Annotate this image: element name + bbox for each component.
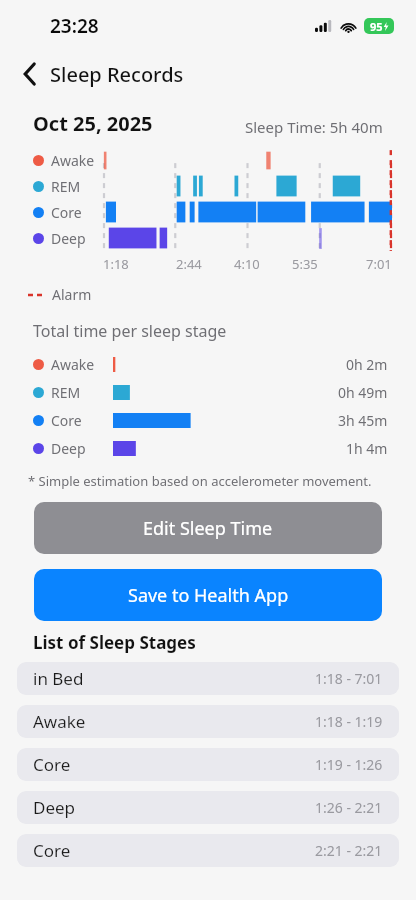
staticText: Edit Sleep Time [143, 516, 273, 541]
button[interactable]: Awake [17, 705, 399, 738]
button[interactable]: Edit Sleep Time [34, 502, 382, 554]
staticText: Awake [33, 710, 86, 733]
staticText: Save to Health App [128, 583, 289, 608]
staticText: Core [33, 753, 71, 776]
staticText: 3h 45m [338, 411, 388, 430]
staticText: 0h 2m [346, 355, 388, 374]
button[interactable]: Core [17, 748, 399, 781]
staticText: in Bed [33, 667, 84, 690]
staticText: Awake [51, 151, 95, 170]
staticText: List of Sleep Stages [33, 631, 196, 654]
staticText: 1:18 [103, 255, 129, 273]
staticText: 5:35 [292, 255, 318, 273]
staticText: 1:18 - 7:01 [315, 669, 383, 688]
staticText: Deep [51, 439, 107, 458]
staticText: 1:26 - 2:21 [315, 798, 383, 817]
staticText: Alarm [52, 285, 92, 304]
staticText: Deep [51, 229, 86, 248]
staticText: Total time per sleep stage [33, 320, 227, 342]
staticText: 1:19 - 1:26 [315, 755, 383, 774]
staticText: 23:28 [50, 13, 99, 39]
staticText: 0h 49m [338, 383, 388, 402]
staticText: Awake [51, 355, 107, 374]
staticText: 7:01 [366, 255, 392, 273]
staticText: Sleep Time: 5h 40m [245, 117, 383, 137]
button[interactable]: Back [12, 56, 48, 92]
staticText: 4:10 [234, 255, 260, 273]
staticText: 2:21 - 2:21 [315, 841, 383, 860]
staticText: Sleep Records [50, 61, 184, 88]
staticText: 1h 4m [346, 439, 388, 458]
button[interactable]: Core [17, 834, 399, 867]
staticText: Oct 25, 2025 [33, 110, 153, 137]
staticText: 1:18 - 1:19 [315, 712, 383, 731]
button[interactable]: in Bed [17, 662, 399, 695]
button[interactable]: Deep [17, 791, 399, 824]
staticText: REM [51, 383, 107, 402]
staticText: 95 [370, 19, 383, 34]
staticText: Deep [33, 796, 76, 819]
staticText: 2:44 [176, 255, 202, 273]
staticText: Core [33, 839, 71, 862]
staticText: Core [51, 203, 82, 222]
button[interactable]: Save to Health App [34, 569, 382, 621]
staticText: * Simple estimation based on acceleromet… [28, 472, 372, 490]
staticText: Core [51, 411, 107, 430]
staticText: REM [51, 177, 81, 196]
